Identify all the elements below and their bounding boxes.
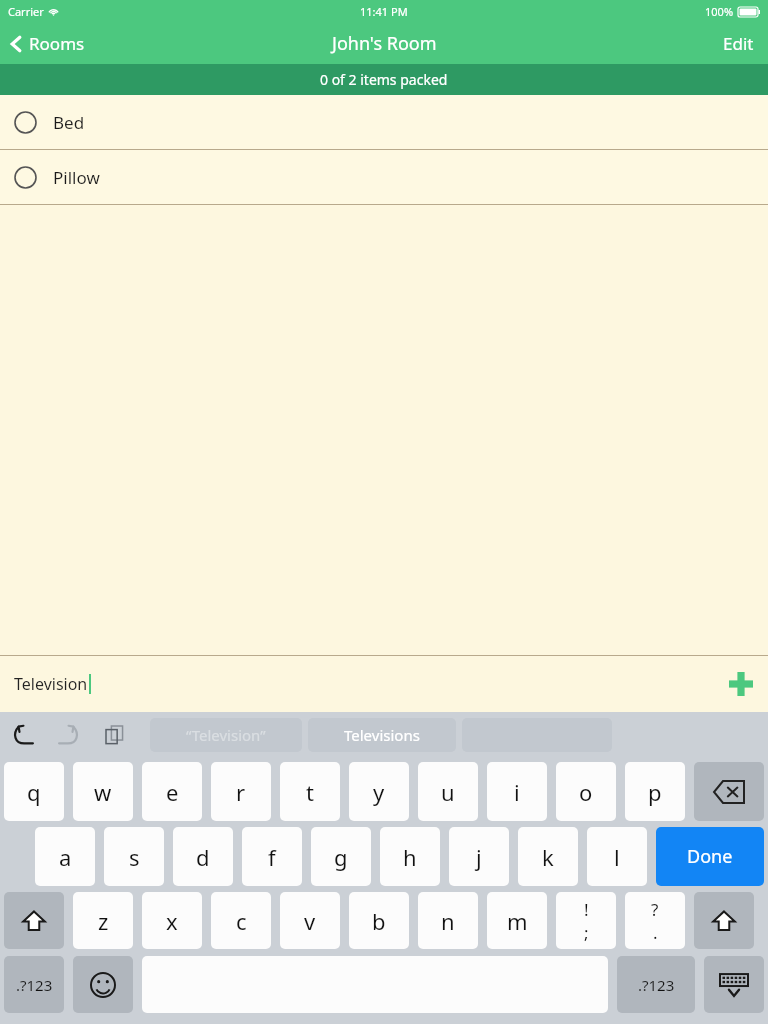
staticText: w [94, 777, 112, 807]
button[interactable]: b [349, 892, 409, 949]
button[interactable]: l [587, 827, 647, 886]
button[interactable]: f [242, 827, 302, 886]
staticText: Pillow [53, 166, 100, 189]
button[interactable]: e [142, 762, 202, 821]
staticText: o [579, 777, 593, 807]
staticText: l [614, 842, 620, 872]
button[interactable]: o [556, 762, 616, 821]
staticText: 100% [705, 4, 734, 19]
staticText: h [403, 842, 417, 872]
staticText: k [542, 842, 554, 872]
button[interactable]: s [104, 827, 164, 886]
button[interactable]: t [280, 762, 340, 821]
button[interactable]: w [73, 762, 133, 821]
staticText: e [166, 777, 179, 807]
staticText: d [196, 842, 210, 872]
button[interactable]: Shift [4, 892, 64, 949]
staticText: m [507, 906, 528, 936]
button[interactable]: n [418, 892, 478, 949]
button[interactable]: Backspace [694, 762, 764, 821]
button[interactable]: Undo [0, 712, 46, 758]
staticText: x [166, 906, 178, 936]
button[interactable]: .?123 [617, 956, 695, 1013]
staticText: g [334, 842, 348, 872]
button[interactable]: j [449, 827, 509, 886]
button[interactable]: ! [556, 892, 616, 949]
staticText: i [514, 777, 520, 807]
staticText: . [653, 921, 658, 944]
button[interactable]: Pillow [0, 150, 768, 204]
button[interactable]: .?123 [4, 956, 64, 1013]
staticText: v [304, 906, 316, 936]
button[interactable]: h [380, 827, 440, 886]
button[interactable]: Paste [92, 712, 138, 758]
staticText: y [373, 777, 385, 807]
staticText: Edit [723, 32, 754, 55]
staticText: s [129, 842, 140, 872]
staticText: ; [584, 921, 589, 944]
staticText: Rooms [29, 32, 85, 55]
staticText: Televisions [344, 725, 420, 745]
button[interactable]: q [4, 762, 64, 821]
staticText: f [268, 842, 276, 872]
button[interactable]: Rooms [0, 28, 97, 59]
staticText: ! [584, 898, 589, 921]
button[interactable]: Redo [46, 712, 92, 758]
staticText: a [59, 842, 72, 872]
staticText: “Television” [186, 725, 266, 745]
button[interactable]: m [487, 892, 547, 949]
button[interactable]: c [211, 892, 271, 949]
staticText: Television [14, 673, 88, 695]
staticText: ? [651, 898, 659, 921]
staticText: Bed [53, 111, 85, 134]
staticText: r [236, 777, 246, 807]
staticText: t [306, 777, 314, 807]
button[interactable]: r [211, 762, 271, 821]
button[interactable]: i [487, 762, 547, 821]
staticText: j [476, 842, 482, 872]
button[interactable]: Shift [694, 892, 754, 949]
button[interactable]: “Television” [150, 718, 302, 752]
button[interactable]: Done [656, 827, 764, 886]
button[interactable]: z [73, 892, 133, 949]
staticText: .?123 [16, 975, 53, 995]
staticText: 0 of 2 items packed [320, 70, 448, 89]
staticText: q [27, 777, 41, 807]
staticText: u [441, 777, 455, 807]
button[interactable]: Bed [0, 95, 768, 149]
button[interactable]: Emoji [73, 956, 133, 1013]
staticText: c [236, 906, 247, 936]
staticText: b [372, 906, 386, 936]
staticText: Carrier [8, 4, 44, 19]
button[interactable]: k [518, 827, 578, 886]
button[interactable]: ? [625, 892, 685, 949]
button[interactable]: Add item [714, 657, 768, 711]
button[interactable]: Hide keyboard [704, 956, 764, 1013]
staticText: z [98, 906, 109, 936]
button[interactable]: x [142, 892, 202, 949]
staticText: p [648, 777, 662, 807]
button[interactable]: g [311, 827, 371, 886]
button[interactable]: u [418, 762, 478, 821]
staticText: John's Room [332, 31, 437, 56]
button[interactable]: Edit [709, 26, 768, 61]
staticText: n [441, 906, 455, 936]
button[interactable]: p [625, 762, 685, 821]
staticText: .?123 [638, 975, 675, 995]
button[interactable]: y [349, 762, 409, 821]
button[interactable]: d [173, 827, 233, 886]
staticText: 11:41 PM [360, 4, 408, 19]
staticText: Done [687, 844, 733, 869]
button[interactable]: v [280, 892, 340, 949]
button[interactable]: a [35, 827, 95, 886]
button[interactable]: Televisions [308, 718, 456, 752]
